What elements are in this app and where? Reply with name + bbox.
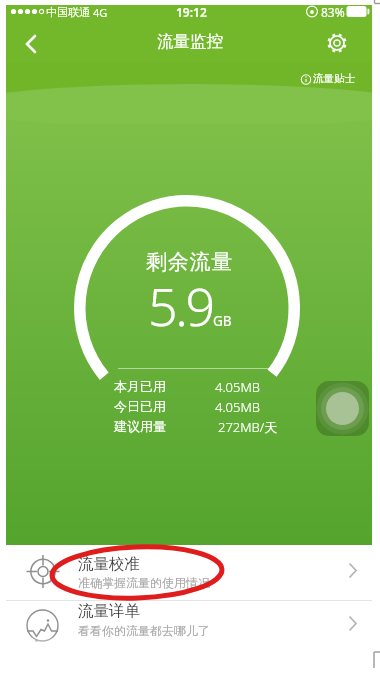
- staticText: 剩余流量: [146, 249, 234, 275]
- staticText: 建议用量: [114, 418, 166, 434]
- staticText: 流量校准: [78, 554, 140, 574]
- staticText: 流量贴士: [313, 72, 355, 85]
- staticText: 19:12: [176, 4, 207, 20]
- button[interactable]: [316, 381, 369, 436]
- staticText: 本月已用: [114, 378, 166, 394]
- button[interactable]: 流量贴士: [296, 70, 362, 88]
- staticText: 准确掌握流量的使用情况: [78, 575, 210, 590]
- button[interactable]: 流量校准: [6, 545, 372, 600]
- staticText: 4.05MB: [215, 398, 260, 416]
- staticText: 看看你的流量都去哪儿了: [78, 623, 210, 638]
- staticText: GB: [213, 312, 232, 330]
- button[interactable]: [16, 28, 48, 60]
- button[interactable]: [322, 28, 352, 58]
- staticText: 流量详单: [78, 601, 140, 621]
- staticText: 272MB/天: [218, 418, 278, 436]
- staticText: 今日已用: [114, 398, 166, 414]
- staticText: 4.05MB: [215, 378, 260, 396]
- staticText: 4G: [93, 5, 108, 20]
- staticText: 中国联通: [46, 5, 90, 19]
- staticText: 5.9: [148, 270, 213, 341]
- button[interactable]: 流量详单: [6, 601, 372, 653]
- staticText: 流量监控: [157, 31, 223, 52]
- staticText: 83%: [321, 4, 345, 20]
